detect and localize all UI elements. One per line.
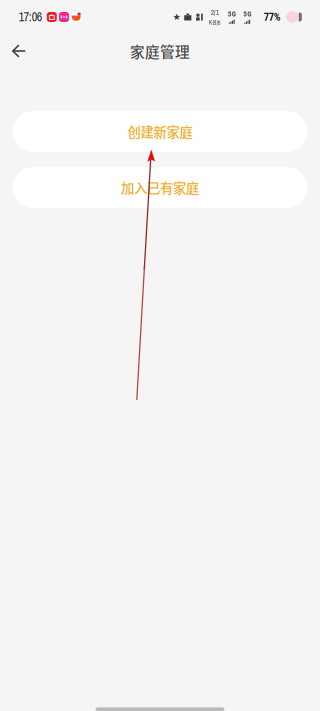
button[interactable]: 创建新家庭 (13, 111, 307, 152)
button[interactable]: Back (0, 34, 38, 68)
staticText: KB/s (209, 18, 221, 27)
staticText: 5G (243, 10, 251, 18)
staticText: 5G (228, 10, 236, 18)
staticText: 17:06 (19, 9, 42, 25)
staticText: 家庭管理 (130, 40, 190, 62)
staticText: 加入已有家庭 (121, 178, 199, 197)
staticText: 创建新家庭 (127, 122, 192, 141)
button[interactable]: 加入已有家庭 (13, 167, 307, 208)
staticText: 2/1 (211, 7, 219, 17)
staticText: 77% (264, 11, 281, 23)
